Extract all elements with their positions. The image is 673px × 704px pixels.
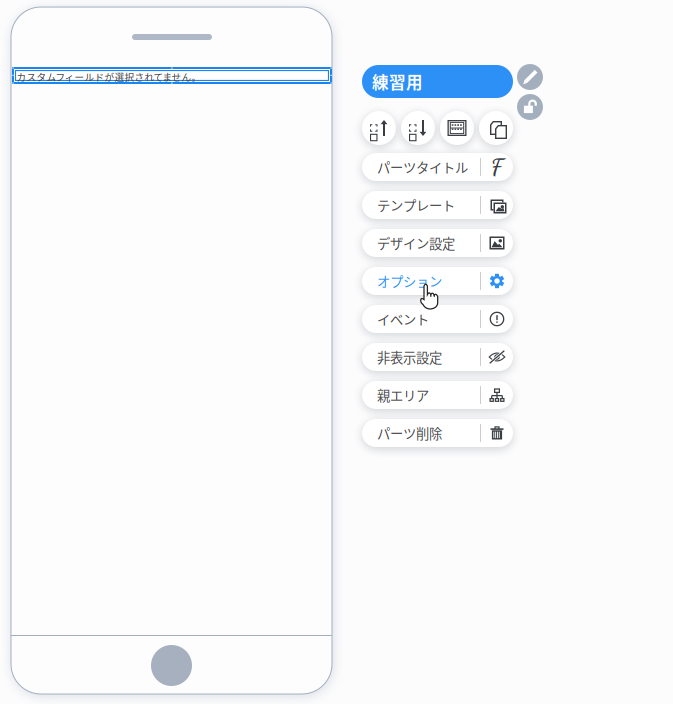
button[interactable]: イベント xyxy=(362,305,513,333)
button[interactable]: 親エリア xyxy=(362,381,513,409)
staticText: オプション xyxy=(377,271,442,291)
button[interactable]: Unlock xyxy=(517,94,543,120)
staticText: パーツタイトル xyxy=(377,157,468,177)
button[interactable]: パーツタイトル xyxy=(362,153,513,181)
button[interactable]: Move up xyxy=(362,111,396,145)
staticText: イベント xyxy=(377,309,429,329)
button[interactable]: パーツ削除 xyxy=(362,419,513,447)
button[interactable]: テンプレート xyxy=(362,191,513,219)
button[interactable]: デザイン設定 xyxy=(362,229,513,257)
staticText: テンプレート xyxy=(377,195,455,215)
staticText: F xyxy=(491,153,503,181)
button[interactable]: 非表示設定 xyxy=(362,343,513,371)
button[interactable]: Move down xyxy=(401,111,435,145)
button[interactable]: Edit xyxy=(517,64,543,90)
staticText: デザイン設定 xyxy=(377,233,455,253)
staticText: パーツ削除 xyxy=(377,423,442,443)
staticText: 練習用 xyxy=(372,69,423,93)
button[interactable]: Layout xyxy=(440,111,474,145)
button[interactable]: オプション xyxy=(362,267,513,295)
staticText: 非表示設定 xyxy=(377,347,442,367)
staticText: 親エリア xyxy=(377,385,429,405)
button[interactable]: 練習用 xyxy=(362,65,513,98)
button[interactable]: Duplicate xyxy=(479,111,513,145)
staticText: カスタムフィールドが選択されてません。 xyxy=(16,69,201,83)
